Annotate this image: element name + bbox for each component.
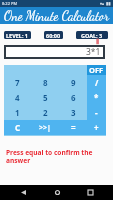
staticText: + [94,122,99,133]
button[interactable]: + [87,120,106,135]
staticText: One Minute Calculator [4,8,110,24]
button[interactable]: GOAL: 3 [76,31,108,39]
button[interactable]: Recents [80,185,100,200]
button[interactable]: 4 [4,90,31,105]
staticText: 5 [43,92,48,103]
staticText: / [95,77,99,88]
staticText: LEVEL: 1 [6,32,29,39]
staticText: 60:00 [46,32,61,39]
staticText: 1 [15,107,20,118]
staticText: 4 [15,92,20,103]
staticText: 3*1 [86,46,101,58]
staticText: 6 [71,92,76,103]
staticText: 8:22 PM [2,1,18,6]
staticText: 8 [43,77,48,88]
button[interactable]: LEVEL: 1 [4,31,31,39]
staticText: GOAL: 3 [81,32,103,39]
staticText: 9 [71,77,76,88]
button[interactable]: - [87,105,106,120]
button[interactable]: 8 [31,75,59,90]
button[interactable]: = [59,120,87,135]
button[interactable]: 5 [31,90,59,105]
button[interactable]: 3 [59,105,87,120]
button[interactable]: 6 [59,90,87,105]
button[interactable]: Back [13,185,33,200]
button[interactable]: 1 [4,105,31,120]
staticText: Press equal to confirm the answer [6,148,93,165]
button[interactable]: C [4,120,31,135]
button[interactable]: OFF [87,65,106,75]
staticText: >>| [39,123,51,133]
staticText: = [71,122,76,133]
button[interactable]: Home [47,185,67,200]
staticText: OFF [89,65,104,75]
staticText: C [15,122,21,133]
staticText: 3 [71,107,76,118]
staticText: - [95,107,98,118]
staticText: 2 [43,107,48,118]
button[interactable]: / [87,75,106,90]
button[interactable]: * [87,90,106,105]
button[interactable]: 60:00 [44,31,63,39]
button[interactable]: 7 [4,75,31,90]
staticText: * [94,92,99,103]
button[interactable]: 9 [59,75,87,90]
button[interactable]: 2 [31,105,59,120]
staticText: 7 [15,77,20,88]
staticText: ▾▴ ▮▮ [100,1,111,6]
button[interactable]: >>| [31,120,59,135]
